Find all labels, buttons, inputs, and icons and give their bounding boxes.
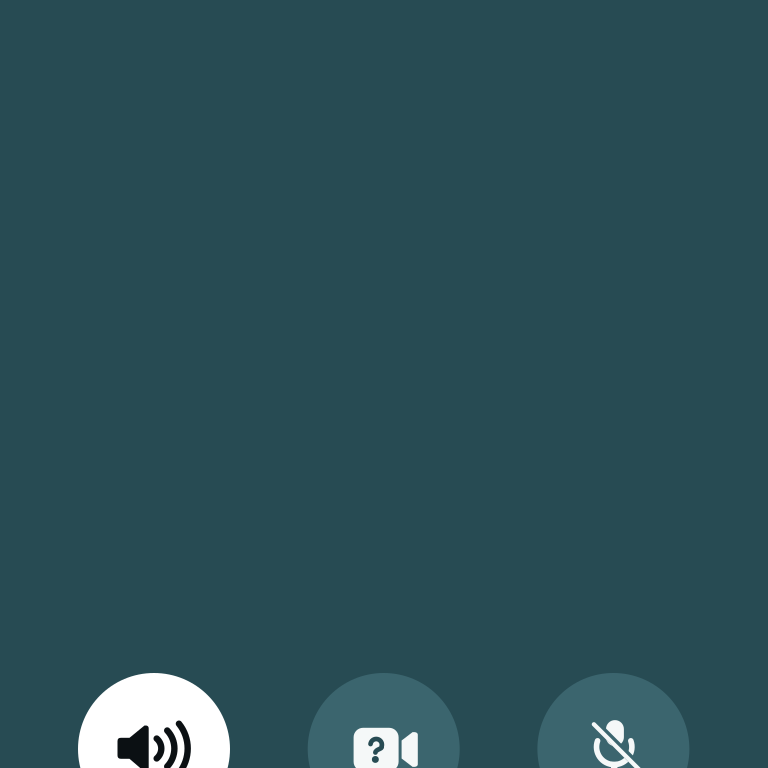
button[interactable]: Mute (537, 673, 689, 768)
button[interactable]: Speaker (78, 673, 230, 768)
button[interactable]: Camera (308, 673, 460, 768)
